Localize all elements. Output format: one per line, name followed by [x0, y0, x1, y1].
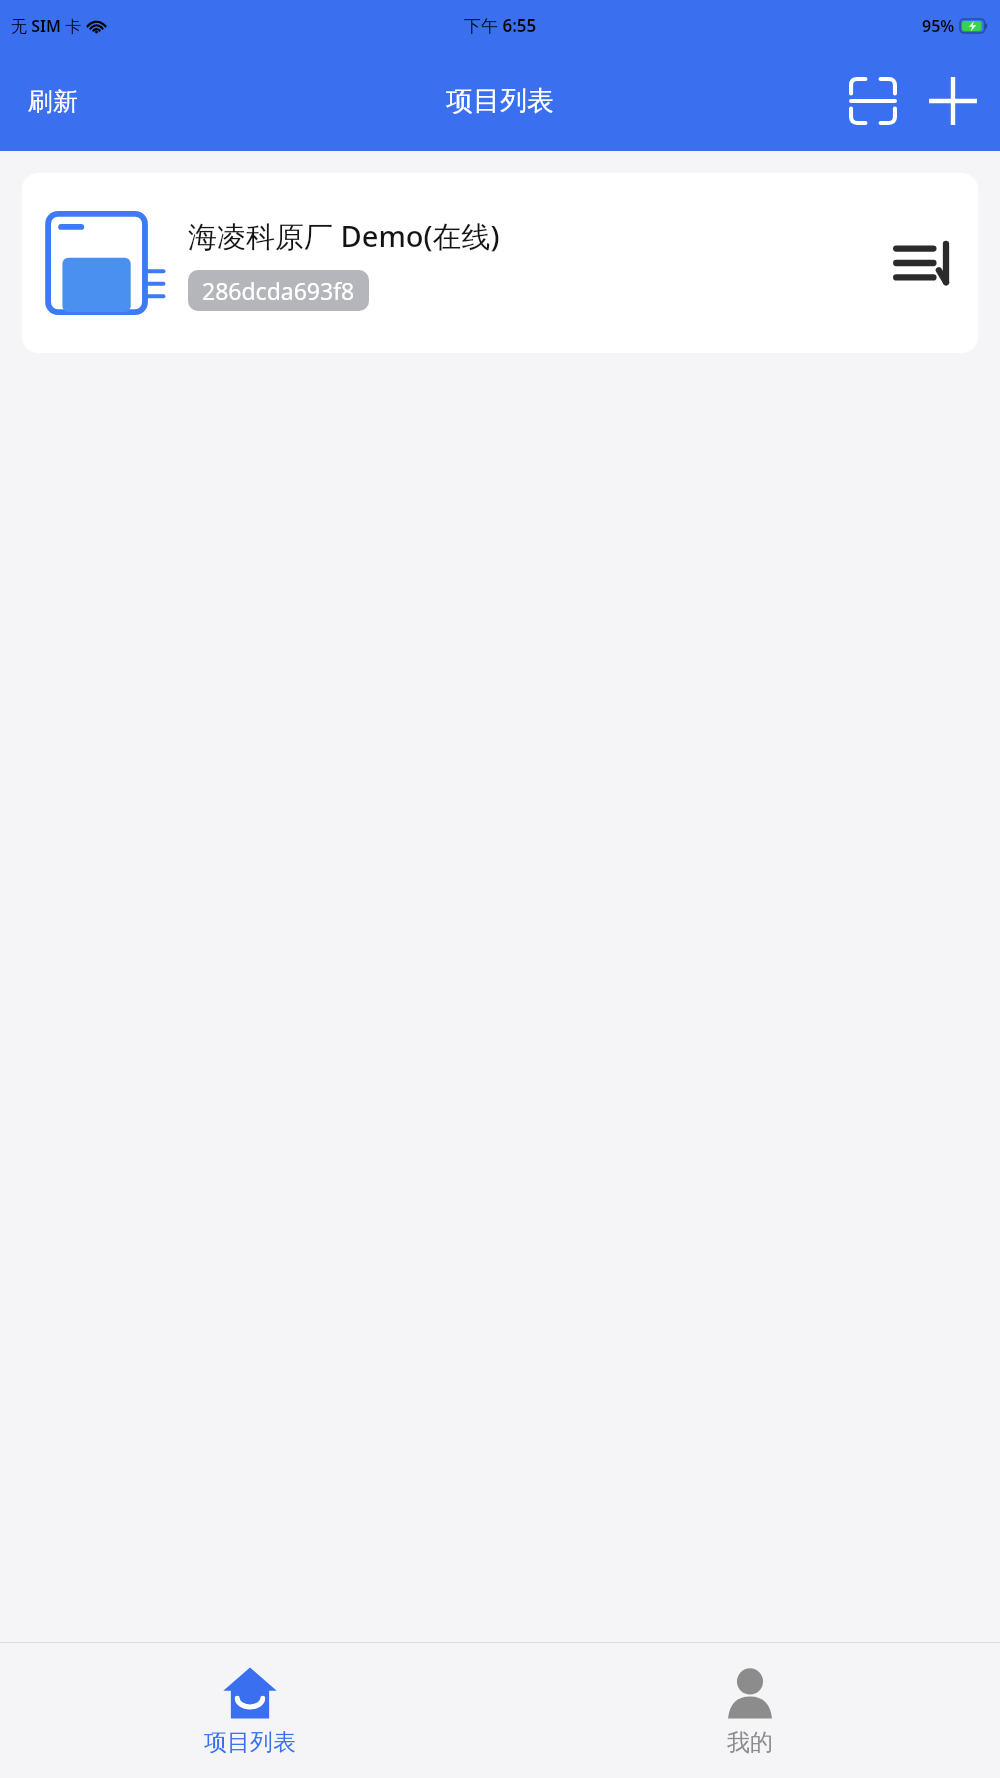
button[interactable]: Sort: [882, 220, 968, 306]
button[interactable]: 项目列表: [0, 1643, 500, 1778]
staticText: 286dcda693f8: [202, 275, 355, 306]
staticText: 下午 6:55: [464, 14, 537, 37]
staticText: 无 SIM 卡: [11, 15, 81, 37]
button[interactable]: 我的: [500, 1643, 1000, 1778]
staticText: 我的: [727, 1728, 773, 1757]
staticText: 海凌科原厂 Demo(在线): [188, 216, 500, 256]
staticText: 项目列表: [204, 1728, 296, 1757]
staticText: 项目列表: [446, 84, 554, 118]
staticText: 刷新: [28, 86, 78, 117]
button[interactable]: Scan: [842, 70, 904, 132]
button[interactable]: Add: [922, 70, 984, 132]
button[interactable]: 海凌科原厂 Demo(在线): [22, 173, 978, 353]
staticText: 95%: [922, 15, 955, 37]
button[interactable]: 刷新: [14, 76, 92, 127]
